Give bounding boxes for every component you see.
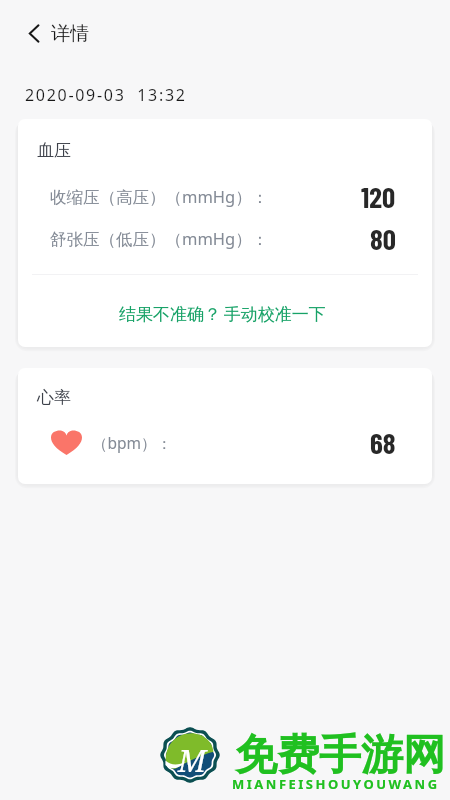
staticText: 免费手游网 <box>235 729 445 782</box>
staticText: 结果不准确？ 手动校准一下 <box>119 302 326 325</box>
staticText: M <box>178 740 207 781</box>
staticText: 120 <box>361 179 396 214</box>
staticText: 80 <box>370 221 396 256</box>
staticText: 详情 <box>51 22 89 46</box>
staticText: 心率 <box>37 387 71 408</box>
staticText: MIANFEISHOUYOUWANG <box>232 775 440 793</box>
staticText: （bpm）： <box>92 432 173 453</box>
staticText: 68 <box>370 425 396 460</box>
staticText: 舒张压（低压）（mmHg）： <box>50 227 269 250</box>
staticText: 2020-09-03 13:32 <box>25 84 187 106</box>
staticText: 收缩压（高压）（mmHg）： <box>50 185 269 208</box>
button[interactable]: 结果不准确？ 手动校准一下 <box>18 295 429 331</box>
staticText: 血压 <box>37 140 71 161</box>
button[interactable]: Back <box>0 8 52 60</box>
